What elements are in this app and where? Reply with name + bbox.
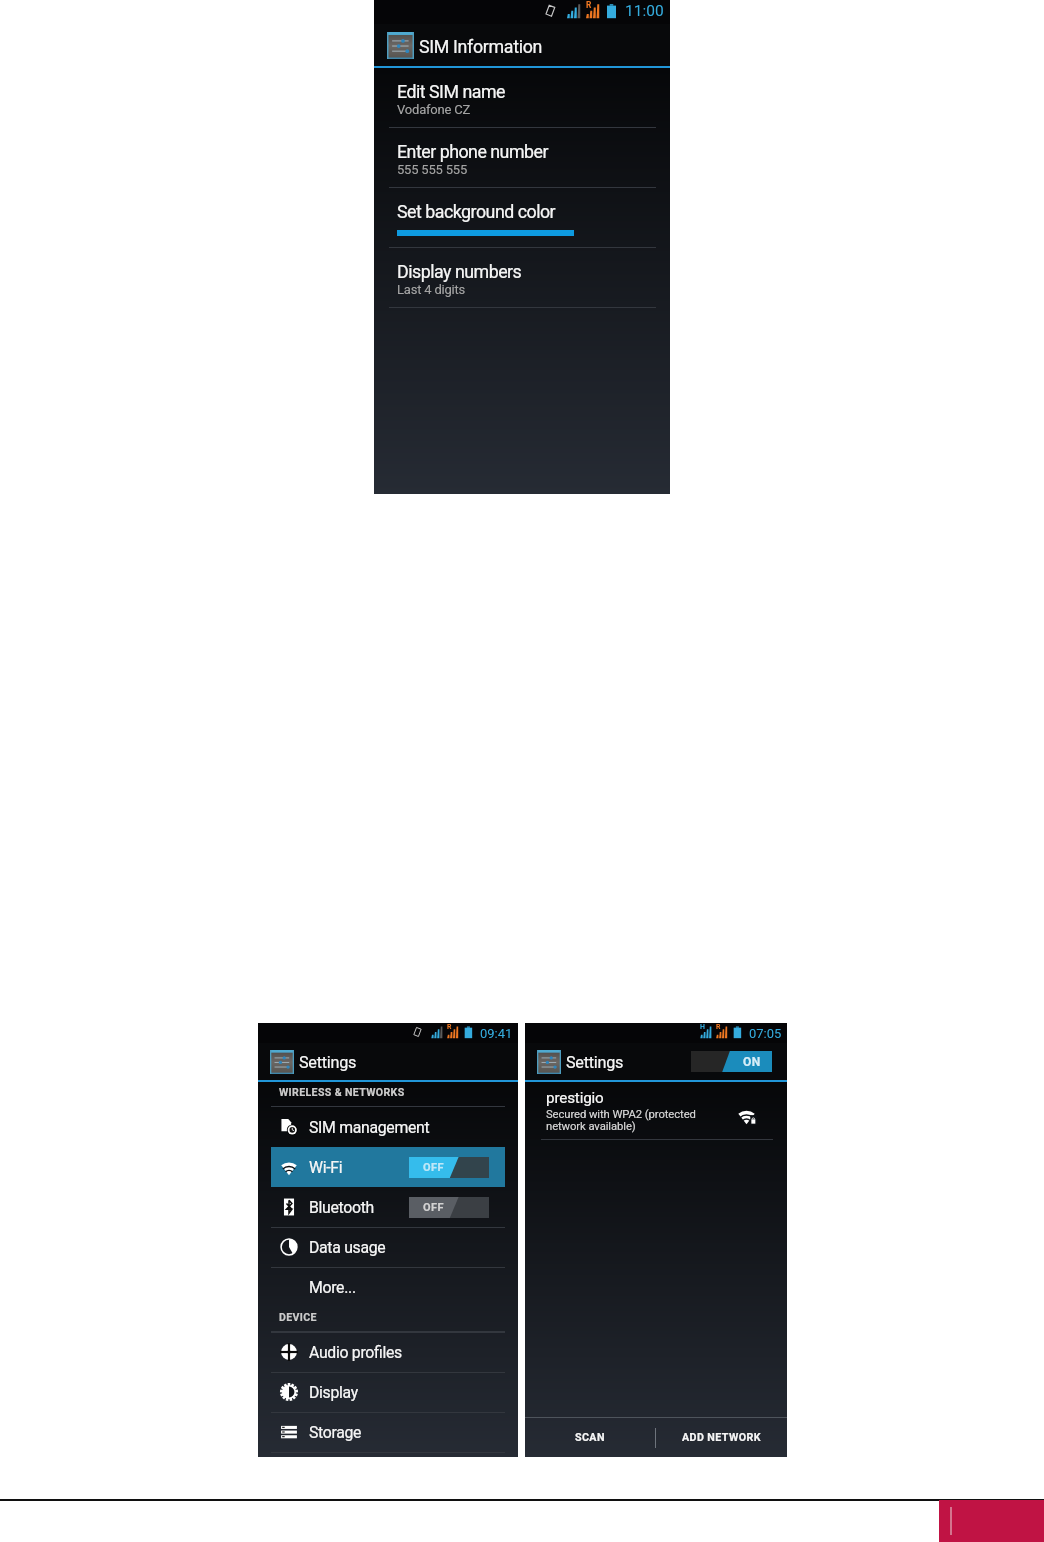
staticText: 09:41 bbox=[480, 1026, 513, 1041]
staticText: Secured with WPA2 (protected network ava… bbox=[546, 1108, 696, 1133]
staticText: DEVICE bbox=[279, 1311, 317, 1323]
button[interactable]: Wi-Fi on bbox=[691, 1051, 772, 1072]
button[interactable]: Data usage bbox=[258, 1227, 518, 1267]
button[interactable]: Set background color bbox=[374, 188, 670, 248]
staticText: R bbox=[586, 0, 592, 10]
staticText: WIRELESS & NETWORKS bbox=[279, 1086, 405, 1098]
staticText: Bluetooth bbox=[309, 1198, 374, 1217]
staticText: Display numbers bbox=[397, 261, 522, 282]
staticText: SIM Information bbox=[419, 36, 543, 57]
button[interactable]: prestigio bbox=[525, 1082, 787, 1140]
staticText: Last 4 digits bbox=[397, 282, 466, 297]
staticText: SCAN bbox=[575, 1431, 605, 1444]
button[interactable]: Enter phone number bbox=[374, 128, 670, 188]
staticText: Display bbox=[309, 1383, 358, 1402]
button[interactable]: Settings bbox=[525, 1043, 787, 1080]
button[interactable]: SCAN bbox=[525, 1418, 655, 1457]
button[interactable]: Toggle off bbox=[409, 1157, 489, 1178]
staticText: Settings bbox=[566, 1053, 624, 1072]
staticText: Enter phone number bbox=[397, 141, 548, 162]
button[interactable]: Bluetooth bbox=[258, 1187, 518, 1227]
button[interactable]: ADD NETWORK bbox=[656, 1418, 787, 1457]
staticText: Edit SIM name bbox=[397, 81, 505, 102]
staticText: 07:05 bbox=[749, 1026, 782, 1041]
button[interactable]: Settings bbox=[258, 1043, 518, 1080]
staticText: prestigio bbox=[546, 1089, 604, 1107]
button[interactable]: Display bbox=[258, 1372, 518, 1412]
staticText: Set background color bbox=[397, 201, 556, 222]
button[interactable]: SIM management bbox=[258, 1107, 518, 1147]
staticText: ON bbox=[743, 1055, 761, 1069]
staticText: Audio profiles bbox=[309, 1343, 402, 1362]
staticText: Vodafone CZ bbox=[397, 102, 471, 117]
staticText: Storage bbox=[309, 1423, 362, 1442]
staticText: Settings bbox=[299, 1053, 357, 1072]
button[interactable]: Storage bbox=[258, 1412, 518, 1452]
staticText: Wi-Fi bbox=[309, 1158, 343, 1177]
staticText: R bbox=[716, 1023, 721, 1031]
staticText: ADD NETWORK bbox=[682, 1431, 761, 1444]
staticText: H bbox=[700, 1023, 705, 1031]
staticText: R bbox=[447, 1023, 452, 1031]
staticText: OFF bbox=[423, 1201, 445, 1214]
button[interactable]: Wi-Fi bbox=[271, 1147, 505, 1187]
staticText: More... bbox=[309, 1278, 356, 1297]
staticText: 11:00 bbox=[625, 2, 664, 20]
staticText: SIM management bbox=[309, 1118, 430, 1137]
button[interactable]: Display numbers bbox=[374, 248, 670, 308]
staticText: Data usage bbox=[309, 1238, 386, 1257]
button[interactable]: Edit SIM name bbox=[374, 68, 670, 128]
staticText: 555 555 555 bbox=[397, 162, 468, 177]
button[interactable]: SIM Information bbox=[374, 24, 670, 66]
button[interactable]: More... bbox=[258, 1267, 518, 1307]
button[interactable]: Toggle off bbox=[409, 1197, 489, 1218]
button[interactable]: Audio profiles bbox=[258, 1332, 518, 1372]
staticText: OFF bbox=[423, 1161, 445, 1174]
